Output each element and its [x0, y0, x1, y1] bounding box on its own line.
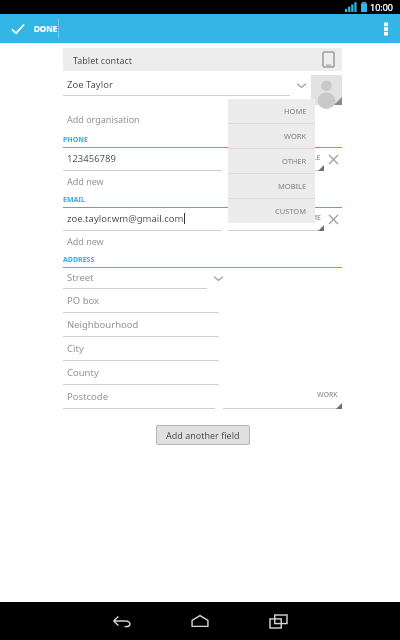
- button[interactable]: Postcode: [63, 385, 215, 409]
- button[interactable]: More options: [372, 14, 400, 43]
- staticText: DONE: [34, 23, 58, 34]
- button[interactable]: Expand name: [294, 75, 308, 96]
- button[interactable]: zoe.taylor.wm@gmail.com: [63, 208, 222, 231]
- button[interactable]: PO box: [63, 289, 219, 313]
- staticText: City: [67, 342, 84, 355]
- staticText: Add new: [67, 175, 104, 187]
- button[interactable]: OTHER: [228, 149, 315, 173]
- staticText: WORK: [317, 390, 338, 400]
- button[interactable]: Neighbourhood: [63, 313, 219, 337]
- button[interactable]: Street: [63, 268, 207, 289]
- staticText: Neighbourhood: [67, 318, 139, 331]
- staticText: CUSTOM: [275, 206, 307, 216]
- staticText: Add organisation: [67, 113, 140, 125]
- button[interactable]: Add new: [63, 234, 219, 248]
- button[interactable]: Home: [161, 602, 239, 640]
- staticText: OTHER: [282, 156, 307, 166]
- button[interactable]: WORK: [228, 124, 315, 148]
- button[interactable]: Tablet contact: [63, 48, 342, 71]
- button[interactable]: Add another field: [156, 425, 250, 445]
- button[interactable]: DONE: [0, 14, 70, 43]
- button[interactable]: WORK: [223, 385, 342, 409]
- staticText: PHONE: [63, 135, 88, 145]
- button[interactable]: CUSTOM: [228, 199, 315, 223]
- staticText: Tablet contact: [73, 54, 133, 66]
- staticText: 10:00: [370, 1, 394, 13]
- button[interactable]: Expand address: [207, 268, 229, 289]
- staticText: HOME: [300, 213, 321, 223]
- button[interactable]: HOME: [228, 208, 324, 231]
- button[interactable]: MOBILE: [228, 174, 315, 198]
- button[interactable]: County: [63, 361, 219, 385]
- button[interactable]: Add new: [63, 174, 219, 188]
- staticText: Add new: [67, 235, 104, 247]
- button[interactable]: Change photo: [311, 75, 342, 105]
- staticText: Postcode: [67, 390, 108, 403]
- button[interactable]: Recent apps: [239, 602, 317, 640]
- staticText: County: [67, 366, 99, 379]
- staticText: zoe.taylor.wm@gmail.com: [67, 212, 184, 225]
- button[interactable]: City: [63, 337, 219, 361]
- staticText: ADDRESS: [63, 255, 95, 265]
- button[interactable]: HOME: [228, 99, 315, 123]
- staticText: MOBILE: [278, 181, 307, 191]
- button[interactable]: Add organisation: [63, 112, 219, 126]
- staticText: MOBILE: [294, 153, 321, 163]
- staticText: Zoe Taylor: [67, 78, 113, 91]
- button[interactable]: Delete MOBILE: [324, 148, 342, 171]
- staticText: PO box: [67, 294, 100, 307]
- staticText: 123456789: [67, 152, 116, 165]
- button[interactable]: Delete HOME: [324, 208, 342, 231]
- button[interactable]: 123456789: [63, 148, 222, 171]
- staticText: EMAIL: [63, 195, 86, 205]
- staticText: WORK: [284, 131, 307, 141]
- button[interactable]: MOBILE: [228, 148, 324, 171]
- button[interactable]: Back: [83, 602, 161, 640]
- staticText: Add another field: [166, 429, 240, 441]
- staticText: HOME: [284, 106, 307, 116]
- staticText: Street: [67, 271, 94, 284]
- button[interactable]: Zoe Taylor: [63, 75, 290, 96]
